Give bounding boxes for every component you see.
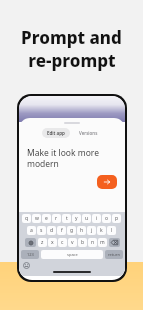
button[interactable]: v [68, 238, 77, 247]
staticText: a [30, 227, 33, 234]
staticText: Versions [79, 130, 98, 136]
staticText: g [70, 227, 74, 234]
button[interactable]: w [32, 214, 41, 223]
staticText: o [105, 215, 109, 222]
button[interactable]: g [67, 226, 76, 235]
button[interactable]: space [41, 250, 103, 259]
staticText: space [67, 252, 78, 257]
button[interactable]: z [38, 238, 47, 247]
staticText: m [100, 239, 105, 246]
staticText: y [75, 215, 78, 222]
button[interactable]: h [77, 226, 86, 235]
button[interactable]: y [72, 214, 81, 223]
staticText: c [61, 239, 64, 246]
button[interactable]: p [112, 214, 121, 223]
button[interactable]: Send prompt [97, 175, 117, 189]
staticText: n [91, 239, 95, 246]
button[interactable]: l [107, 226, 116, 235]
button[interactable]: Versions [74, 128, 103, 138]
staticText: f [61, 227, 63, 234]
button[interactable]: j [87, 226, 96, 235]
staticText: Prompt and [21, 26, 122, 49]
other: Shift [28, 240, 34, 246]
button[interactable]: Delete [109, 238, 120, 247]
staticText: k [100, 227, 103, 234]
button[interactable]: f [57, 226, 66, 235]
staticText: v [71, 239, 74, 246]
staticText: re-prompt [28, 49, 116, 72]
staticText: r [55, 215, 58, 222]
button[interactable]: t [62, 214, 71, 223]
button[interactable]: x [48, 238, 57, 247]
staticText: u [85, 215, 89, 222]
button[interactable]: Shift [25, 238, 36, 247]
staticText: 123 [27, 252, 34, 257]
staticText: return [108, 252, 120, 257]
staticText: q [25, 215, 29, 222]
staticText: b [81, 239, 85, 246]
staticText: Edit app [47, 130, 65, 136]
staticText: s [40, 227, 43, 234]
staticText: w [35, 215, 39, 222]
button[interactable]: b [78, 238, 87, 247]
button[interactable]: o [102, 214, 111, 223]
button[interactable]: c [58, 238, 67, 247]
button[interactable]: i [92, 214, 101, 223]
staticText: x [51, 239, 54, 246]
staticText: p [115, 215, 119, 222]
button[interactable]: return [105, 250, 123, 259]
button[interactable]: m [98, 238, 107, 247]
staticText: d [50, 227, 54, 234]
staticText: z [41, 239, 44, 246]
button[interactable]: k [97, 226, 106, 235]
button[interactable]: Edit app [42, 128, 70, 138]
button[interactable]: r [52, 214, 61, 223]
button[interactable]: u [82, 214, 91, 223]
button[interactable]: q [22, 214, 31, 223]
button[interactable]: a [27, 226, 36, 235]
button[interactable]: s [37, 226, 46, 235]
staticText: e [45, 215, 48, 222]
button[interactable]: 123 [21, 250, 39, 259]
other: Delete [111, 240, 118, 245]
staticText: j [91, 227, 93, 234]
button[interactable]: Emoji keyboard [23, 262, 30, 269]
staticText: l [111, 227, 113, 234]
button[interactable]: n [88, 238, 97, 247]
staticText: h [80, 227, 84, 234]
staticText: Make it look more modern [27, 147, 99, 169]
button[interactable]: e [42, 214, 51, 223]
staticText: i [96, 215, 98, 222]
staticText: t [66, 215, 68, 222]
button[interactable]: d [47, 226, 56, 235]
